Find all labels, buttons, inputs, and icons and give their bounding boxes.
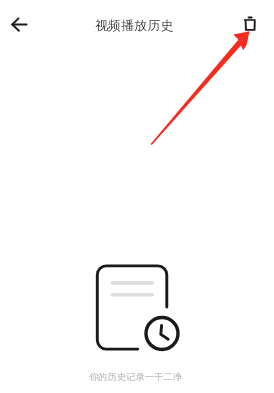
button[interactable]: Back bbox=[0, 1, 41, 45]
button[interactable]: Clear history bbox=[234, 3, 270, 39]
staticText: 视频播放历史 bbox=[95, 17, 174, 34]
staticText: 你的历史记录一干二净 bbox=[89, 371, 274, 383]
